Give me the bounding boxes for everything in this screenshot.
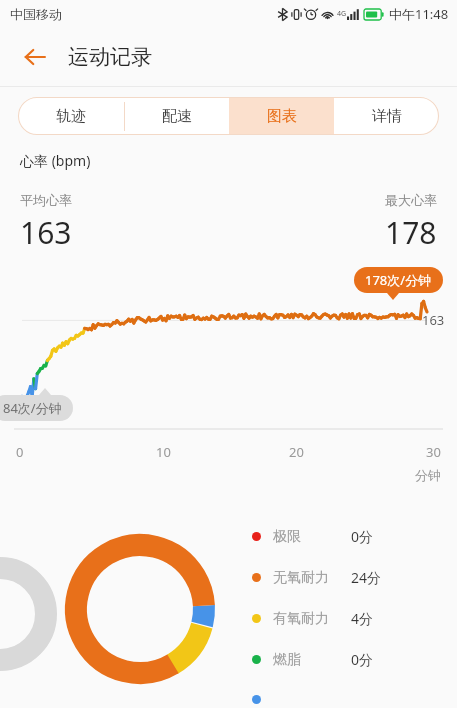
staticText: 配速 <box>162 107 192 126</box>
button[interactable]: 轨迹 <box>18 97 124 135</box>
staticText: 0分 <box>351 527 374 546</box>
staticText: 无氧耐力 <box>273 569 351 587</box>
staticText: 心率 (bpm) <box>20 151 91 170</box>
button[interactable]: 图表 <box>229 97 334 135</box>
staticText: 分钟 <box>16 467 441 483</box>
staticText: 中国移动 <box>10 6 62 22</box>
button[interactable]: Back <box>14 36 56 78</box>
staticText: 30 <box>426 443 441 461</box>
button[interactable]: 详情 <box>334 97 439 135</box>
staticText: 163 <box>422 311 445 329</box>
staticText: 0分 <box>351 650 374 669</box>
staticText: 163 <box>20 212 72 253</box>
staticText: 178 <box>385 212 437 253</box>
staticText: 0 <box>16 443 24 461</box>
staticText: 有氧耐力 <box>273 610 351 628</box>
staticText: 极限 <box>273 528 351 546</box>
staticText: 4G <box>337 9 347 19</box>
staticText: 详情 <box>372 107 402 126</box>
staticText: 中午11:48 <box>389 5 449 23</box>
staticText: 燃脂 <box>273 651 351 669</box>
staticText: 运动记录 <box>68 44 152 70</box>
staticText: 4分 <box>351 609 374 628</box>
staticText: 最大心率 <box>385 192 437 208</box>
staticText: 24分 <box>351 568 382 587</box>
staticText: 平均心率 <box>20 192 72 208</box>
staticText: 178次/分钟 <box>365 271 432 289</box>
staticText: 10 <box>156 443 171 461</box>
staticText: 20 <box>289 443 304 461</box>
staticText: 图表 <box>267 107 297 126</box>
staticText: 轨迹 <box>56 107 86 126</box>
button[interactable]: 配速 <box>124 97 229 135</box>
staticText: 84次/分钟 <box>3 399 62 417</box>
